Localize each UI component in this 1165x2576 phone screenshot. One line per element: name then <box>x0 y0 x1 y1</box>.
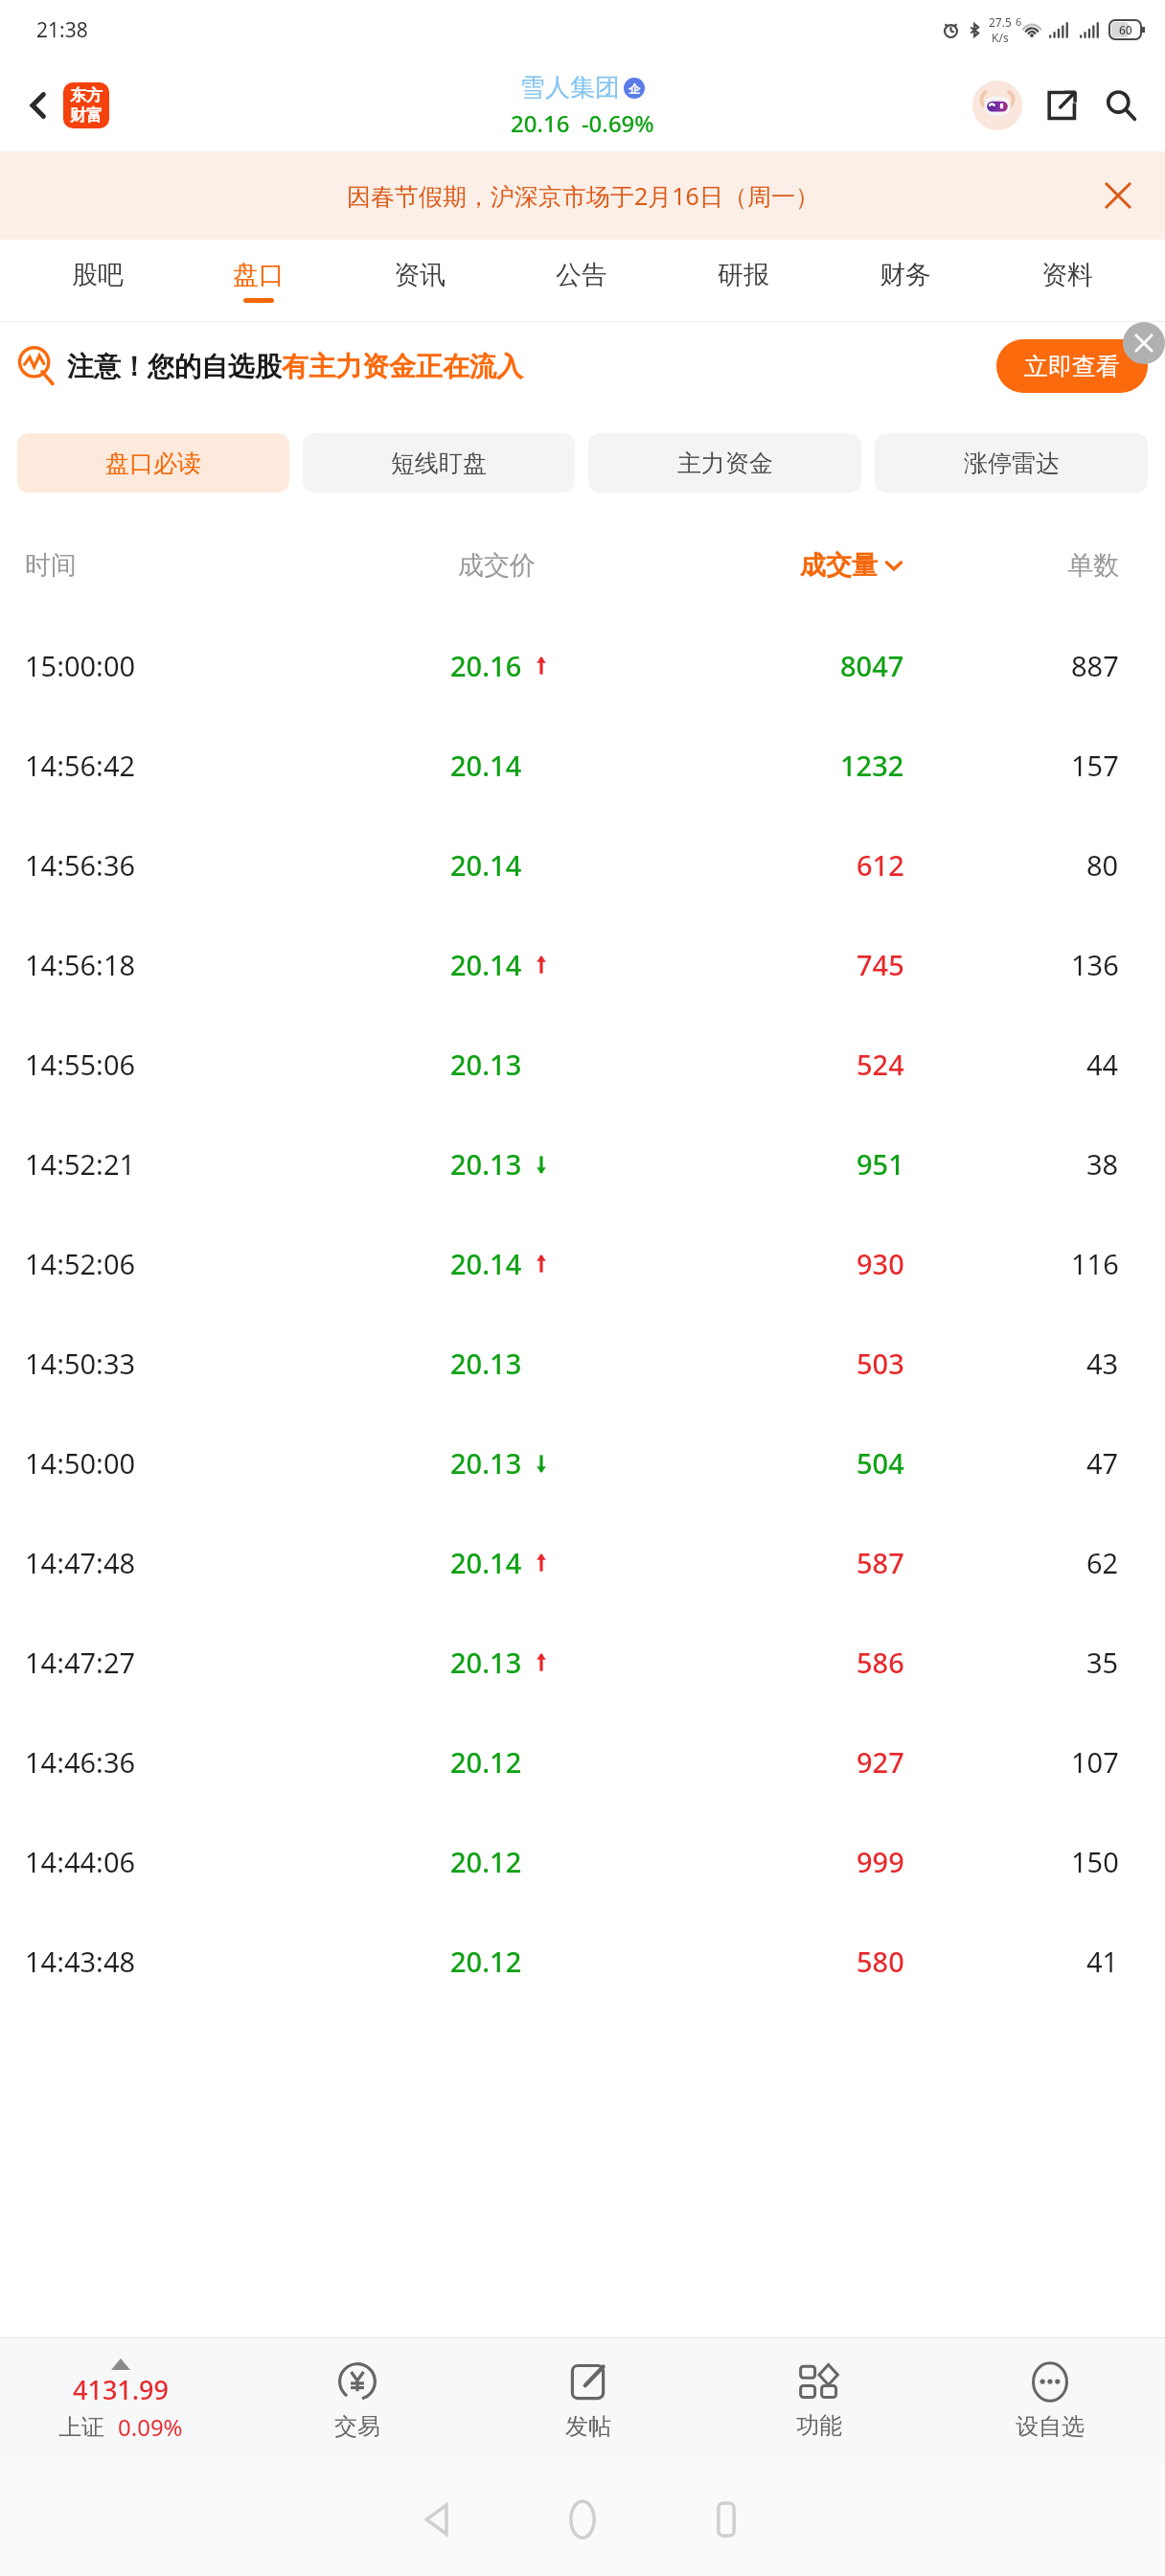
staticText: 43 <box>1086 1345 1119 1382</box>
staticText: 涨停雷达 <box>964 448 1060 478</box>
staticText: 47 <box>1086 1444 1119 1482</box>
staticText: 157 <box>1071 747 1119 784</box>
staticText: 20.14 <box>450 1245 522 1282</box>
button[interactable]: Back <box>13 80 63 130</box>
staticText: 8047 <box>840 647 904 684</box>
button[interactable]: 资料 <box>986 240 1148 322</box>
staticText: 短线盯盘 <box>391 448 487 478</box>
button[interactable]: Assistant <box>970 78 1025 133</box>
button[interactable]: 涨停雷达 <box>875 433 1148 493</box>
staticText: 时间 <box>25 549 77 582</box>
staticText: 745 <box>857 946 904 983</box>
button[interactable]: 功能 <box>703 2338 934 2463</box>
staticText: 雪人集团 <box>520 72 620 103</box>
staticText: 上证 <box>58 2413 104 2442</box>
staticText: 38 <box>1086 1145 1119 1183</box>
staticText: 14:52:06 <box>25 1245 136 1282</box>
staticText: 116 <box>1071 1245 1119 1282</box>
staticText: 20.16 <box>450 647 522 684</box>
button[interactable]: 研报 <box>662 240 824 322</box>
staticText: 资料 <box>1041 259 1093 291</box>
staticText: 资讯 <box>394 259 445 291</box>
staticText: 14:46:36 <box>25 1743 136 1781</box>
button[interactable]: 盘口 <box>178 240 339 322</box>
staticText: 14:44:06 <box>25 1843 136 1880</box>
button[interactable]: Recents <box>683 2476 769 2563</box>
staticText: 20.13 <box>450 1145 522 1183</box>
staticText: 41 <box>1086 1943 1119 1980</box>
staticText: 80 <box>1086 846 1119 884</box>
staticText: 20.13 <box>450 1444 522 1482</box>
staticText: 612 <box>857 846 904 884</box>
staticText: 14:55:06 <box>25 1046 136 1083</box>
staticText: 27.5 <box>989 14 1012 30</box>
staticText: 发帖 <box>565 2412 611 2441</box>
staticText: 6 <box>1016 14 1022 29</box>
staticText: 999 <box>857 1843 904 1880</box>
staticText: K/s <box>992 30 1009 45</box>
staticText: 927 <box>857 1743 904 1781</box>
button[interactable]: 发帖 <box>472 2338 703 2463</box>
staticText: 586 <box>857 1644 904 1681</box>
staticText: 951 <box>857 1145 904 1183</box>
staticText: 14:56:42 <box>25 747 136 784</box>
staticText: 20.14 <box>450 946 522 983</box>
staticText: 524 <box>857 1046 904 1083</box>
staticText: 成交量 <box>800 549 878 582</box>
staticText: 21:38 <box>36 16 88 44</box>
staticText: 150 <box>1071 1843 1119 1880</box>
staticText: 503 <box>857 1345 904 1382</box>
button[interactable]: 盘口必读 <box>17 433 289 493</box>
staticText: 14:56:36 <box>25 846 136 884</box>
button[interactable]: 资讯 <box>339 240 500 322</box>
button[interactable]: Close notice <box>1092 170 1144 221</box>
button[interactable]: 设自选 <box>934 2338 1165 2463</box>
staticText: 14:56:18 <box>25 946 136 983</box>
staticText: 14:52:21 <box>25 1145 136 1183</box>
staticText: 136 <box>1071 946 1119 983</box>
staticText: 20.13 <box>450 1345 522 1382</box>
staticText: 4131.99 <box>73 2372 170 2407</box>
staticText: 东方 <box>70 85 103 105</box>
staticText: 14:47:27 <box>25 1644 136 1681</box>
staticText: 1232 <box>840 747 904 784</box>
staticText: 交易 <box>334 2412 380 2441</box>
button[interactable]: 因春节假期，沪深京市场于2月16日（周一） <box>0 151 1165 240</box>
button[interactable]: 公告 <box>500 240 662 322</box>
button[interactable]: Search <box>1094 79 1148 132</box>
staticText: 研报 <box>718 259 769 291</box>
staticText: 盘口必读 <box>105 448 201 478</box>
staticText: 107 <box>1071 1743 1119 1781</box>
button[interactable]: Home <box>539 2476 626 2563</box>
staticText: 立即查看 <box>1024 352 1120 381</box>
staticText: 587 <box>857 1544 904 1581</box>
staticText: 20.13 <box>450 1644 522 1681</box>
staticText: 20.12 <box>450 1943 522 1980</box>
staticText: 14:50:00 <box>25 1444 136 1482</box>
button[interactable]: 交易 <box>241 2338 472 2463</box>
staticText: 因春节假期，沪深京市场于2月16日（周一） <box>347 179 819 212</box>
staticText: 财务 <box>879 259 931 291</box>
button[interactable]: 立即查看 <box>996 339 1148 393</box>
button[interactable]: 东方 <box>63 82 109 128</box>
staticText: 财富 <box>70 105 103 126</box>
staticText: 股吧 <box>72 259 124 291</box>
button[interactable]: 财务 <box>824 240 986 322</box>
staticText: 20.12 <box>450 1743 522 1781</box>
staticText: 62 <box>1086 1544 1119 1581</box>
staticText: 14:47:48 <box>25 1544 136 1581</box>
button[interactable]: Back <box>396 2476 482 2563</box>
staticText: 主力资金 <box>677 448 773 478</box>
staticText: 580 <box>857 1943 904 1980</box>
staticText: 20.14 <box>450 1544 522 1581</box>
staticText: 企 <box>628 81 640 96</box>
staticText: 有主力资金正在流入 <box>282 350 523 383</box>
staticText: 20.13 <box>450 1046 522 1083</box>
button[interactable]: 主力资金 <box>588 433 861 493</box>
staticText: 14:50:33 <box>25 1345 136 1382</box>
button[interactable]: 短线盯盘 <box>303 433 575 493</box>
button[interactable]: Share <box>1035 79 1088 132</box>
button[interactable]: 股吧 <box>17 240 178 322</box>
button[interactable]: Close ad <box>1123 322 1165 364</box>
button[interactable]: 4131.99 <box>0 2338 241 2463</box>
